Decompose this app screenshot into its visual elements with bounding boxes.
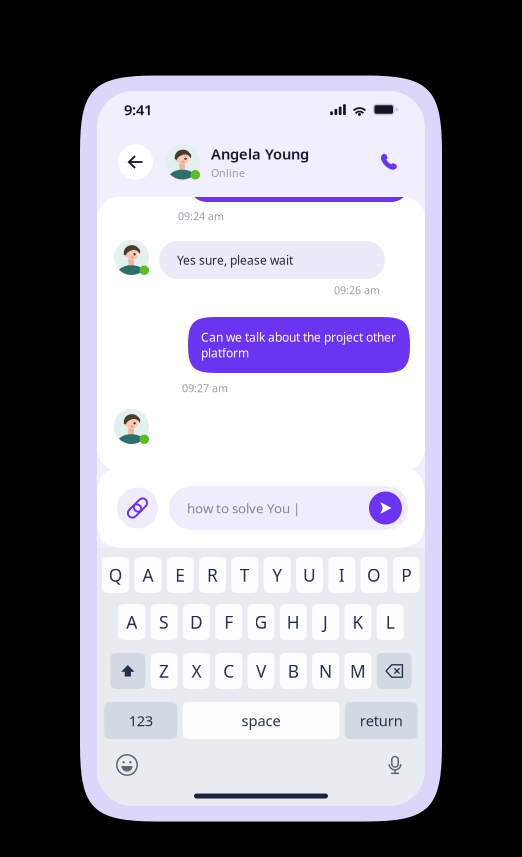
- staticText: A: [142, 563, 153, 586]
- staticText: E: [175, 563, 185, 586]
- staticText: return: [360, 711, 403, 730]
- button[interactable]: Q: [102, 557, 129, 593]
- staticText: A: [126, 610, 137, 633]
- button[interactable]: return: [345, 702, 418, 739]
- staticText: Can we talk about the project other plat…: [201, 329, 396, 361]
- button[interactable]: L: [377, 604, 404, 640]
- staticText: 09:24 am: [178, 209, 224, 223]
- staticText: X: [191, 659, 201, 682]
- staticText: space: [241, 711, 280, 730]
- staticText: Online: [211, 166, 245, 180]
- button[interactable]: P: [393, 557, 420, 593]
- button[interactable]: C: [215, 653, 242, 689]
- staticText: Z: [159, 659, 169, 682]
- button[interactable]: Send message: [369, 491, 402, 524]
- staticText: Y: [272, 563, 282, 586]
- button[interactable]: E: [167, 557, 194, 593]
- button[interactable]: T: [231, 557, 258, 593]
- staticText: 123: [129, 711, 153, 730]
- staticText: M: [350, 659, 366, 682]
- button[interactable]: F: [215, 604, 242, 640]
- staticText: C: [223, 659, 234, 682]
- button[interactable]: D: [183, 604, 210, 640]
- button[interactable]: O: [361, 557, 388, 593]
- button[interactable]: M: [344, 653, 371, 689]
- button[interactable]: U: [296, 557, 323, 593]
- button[interactable]: K: [344, 604, 371, 640]
- button[interactable]: R: [199, 557, 226, 593]
- staticText: R: [207, 563, 218, 586]
- staticText: O: [367, 563, 381, 586]
- button[interactable]: Delete: [377, 653, 412, 689]
- staticText: N: [319, 659, 332, 682]
- staticText: G: [254, 610, 267, 633]
- staticText: J: [323, 610, 328, 633]
- staticText: L: [386, 610, 395, 633]
- button[interactable]: A: [134, 557, 161, 593]
- button[interactable]: Attach file: [117, 487, 158, 528]
- staticText: I: [339, 563, 345, 586]
- staticText: P: [401, 563, 411, 586]
- button[interactable]: V: [247, 653, 274, 689]
- button[interactable]: B: [280, 653, 307, 689]
- button[interactable]: Shift: [110, 653, 145, 689]
- staticText: Angela Young: [211, 144, 309, 164]
- staticText: 9:41: [124, 100, 152, 119]
- button[interactable]: I: [328, 557, 355, 593]
- button[interactable]: A: [118, 604, 145, 640]
- button[interactable]: Dictate: [375, 750, 415, 780]
- button[interactable]: X: [183, 653, 210, 689]
- button[interactable]: S: [151, 604, 178, 640]
- button[interactable]: space: [182, 702, 339, 739]
- button[interactable]: Z: [151, 653, 178, 689]
- button[interactable]: J: [312, 604, 339, 640]
- staticText: how to solve You |: [187, 499, 300, 517]
- staticText: 09:26 am: [334, 283, 380, 297]
- staticText: V: [256, 659, 266, 682]
- staticText: T: [240, 563, 250, 586]
- button[interactable]: Back: [118, 144, 153, 179]
- staticText: U: [303, 563, 316, 586]
- staticText: D: [190, 610, 203, 633]
- button[interactable]: 123: [104, 702, 177, 739]
- button[interactable]: G: [247, 604, 274, 640]
- staticText: K: [352, 610, 363, 633]
- staticText: Q: [109, 563, 123, 586]
- button[interactable]: H: [280, 604, 307, 640]
- staticText: F: [224, 610, 233, 633]
- button[interactable]: Emoji keyboard: [107, 750, 147, 780]
- staticText: S: [159, 610, 169, 633]
- button[interactable]: Call: [376, 149, 402, 175]
- button[interactable]: N: [312, 653, 339, 689]
- staticText: B: [288, 659, 299, 682]
- button[interactable]: Y: [264, 557, 291, 593]
- staticText: H: [287, 610, 300, 633]
- staticText: 09:27 am: [182, 381, 228, 395]
- staticText: Yes sure, please wait: [177, 252, 293, 268]
